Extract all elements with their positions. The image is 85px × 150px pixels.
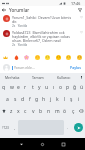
button[interactable]: Emoji	[55, 54, 62, 61]
button[interactable]: z	[8, 105, 15, 117]
button[interactable]: ğ	[71, 81, 78, 93]
button[interactable]: t	[29, 81, 36, 93]
staticText: 2s Yanitla	[12, 43, 28, 47]
button[interactable]: Voice input	[77, 73, 85, 81]
button[interactable]: Paylas	[69, 64, 82, 71]
button[interactable]: Send	[74, 123, 83, 132]
staticText: b	[39, 108, 43, 115]
button[interactable]: a	[3, 93, 11, 105]
button[interactable]: g	[33, 93, 40, 105]
staticText: f	[29, 96, 31, 103]
button[interactable]: Shift	[0, 105, 8, 117]
button[interactable]: p	[64, 81, 71, 93]
staticText: m	[55, 108, 60, 115]
button[interactable]: i	[75, 93, 82, 105]
button[interactable]: Like	[78, 15, 84, 21]
button[interactable]: ş	[68, 93, 75, 105]
button[interactable]: Like	[78, 30, 84, 36]
button[interactable]: f	[26, 93, 33, 105]
button[interactable]: Emoji blossom	[23, 54, 30, 61]
staticText: q	[2, 84, 6, 91]
staticText: Yoldas4723 Bismillahirahim cok haykirdim…	[12, 30, 75, 43]
staticText: y	[38, 84, 41, 91]
button[interactable]: b	[37, 105, 45, 117]
staticText: p	[66, 84, 70, 91]
button[interactable]: e	[15, 81, 22, 93]
button[interactable]: Emoji	[34, 54, 41, 61]
button[interactable]: d	[19, 93, 26, 105]
button[interactable]: Merhaba	[0, 73, 25, 81]
button[interactable]: c	[22, 105, 29, 117]
staticText: Kullanıcı	[57, 75, 71, 80]
button[interactable]: Recents	[58, 139, 69, 150]
button[interactable]: ?123	[0, 119, 11, 136]
button[interactable]: x	[15, 105, 22, 117]
staticText: g	[35, 96, 39, 103]
staticText: r	[24, 84, 27, 91]
staticText: ö	[63, 108, 67, 115]
button[interactable]: Emoji	[76, 54, 83, 61]
staticText: l	[64, 96, 66, 103]
button[interactable]: u	[43, 81, 50, 93]
button[interactable]: Kullanıcı	[51, 73, 77, 81]
button[interactable]: w	[8, 81, 15, 93]
button[interactable]: r	[22, 81, 29, 93]
staticText: ı	[53, 84, 55, 91]
button[interactable]: s	[11, 93, 19, 105]
staticText: ,	[14, 125, 16, 131]
staticText: Paylas	[70, 65, 81, 70]
staticText: j	[50, 96, 52, 103]
button[interactable]: Emoji	[44, 54, 51, 61]
button[interactable]: Home	[37, 139, 48, 150]
staticText: n	[47, 108, 51, 115]
staticText: h	[42, 96, 46, 103]
button[interactable]: ,	[11, 119, 18, 136]
staticText: ş	[70, 96, 73, 103]
button[interactable]: Sort comments	[76, 6, 84, 13]
button[interactable]: Yoldas4723 Bismillahirahim cok haykirdim…	[0, 28, 85, 47]
button[interactable]: Back	[0, 6, 8, 13]
button[interactable]: Emoji crown	[2, 54, 9, 61]
button[interactable]: h	[40, 93, 47, 105]
button[interactable]: o	[57, 81, 64, 93]
button[interactable]: j	[47, 93, 54, 105]
button[interactable]: ö	[61, 105, 69, 117]
staticText: c	[24, 108, 27, 115]
button[interactable]: m	[53, 105, 61, 117]
button[interactable]: y	[36, 81, 43, 93]
staticText: o	[59, 84, 63, 91]
button[interactable]: ü	[78, 81, 85, 93]
button[interactable]: Emoji fire	[13, 54, 20, 61]
staticText: d	[21, 96, 25, 103]
staticText: u	[45, 84, 49, 91]
staticText: k	[56, 96, 59, 103]
staticText: x	[17, 108, 20, 115]
staticText: ?123	[2, 126, 9, 130]
staticText: ü	[80, 84, 84, 91]
staticText: ç	[72, 108, 75, 115]
staticText: a	[6, 96, 9, 103]
button[interactable]: l	[61, 93, 68, 105]
staticText: 17:46	[71, 1, 81, 6]
button[interactable]: Tamam	[25, 73, 51, 81]
button[interactable]: Emoji	[65, 54, 72, 61]
button[interactable]: Yorum1_Sahibi Devam! Uzun bitmis dir.	[0, 13, 85, 28]
staticText: Yorum1_Sahibi Devam! Uzun bitmis dir.	[12, 15, 75, 24]
button[interactable]: q	[0, 81, 8, 93]
staticText: s	[14, 96, 17, 103]
button[interactable]: ç	[69, 105, 77, 117]
button[interactable]: k	[54, 93, 61, 105]
staticText: v	[32, 108, 35, 115]
staticText: Merhaba	[5, 75, 20, 80]
staticText: ğ	[73, 84, 77, 91]
button[interactable]: Backspace	[77, 105, 85, 117]
button[interactable]: n	[45, 105, 53, 117]
button[interactable]: Back	[16, 139, 27, 150]
staticText: i	[78, 96, 80, 103]
staticText: 2s Yanitla	[12, 24, 28, 28]
button[interactable]: ı	[50, 81, 57, 93]
button[interactable]: v	[29, 105, 37, 117]
staticText: .	[67, 125, 69, 131]
